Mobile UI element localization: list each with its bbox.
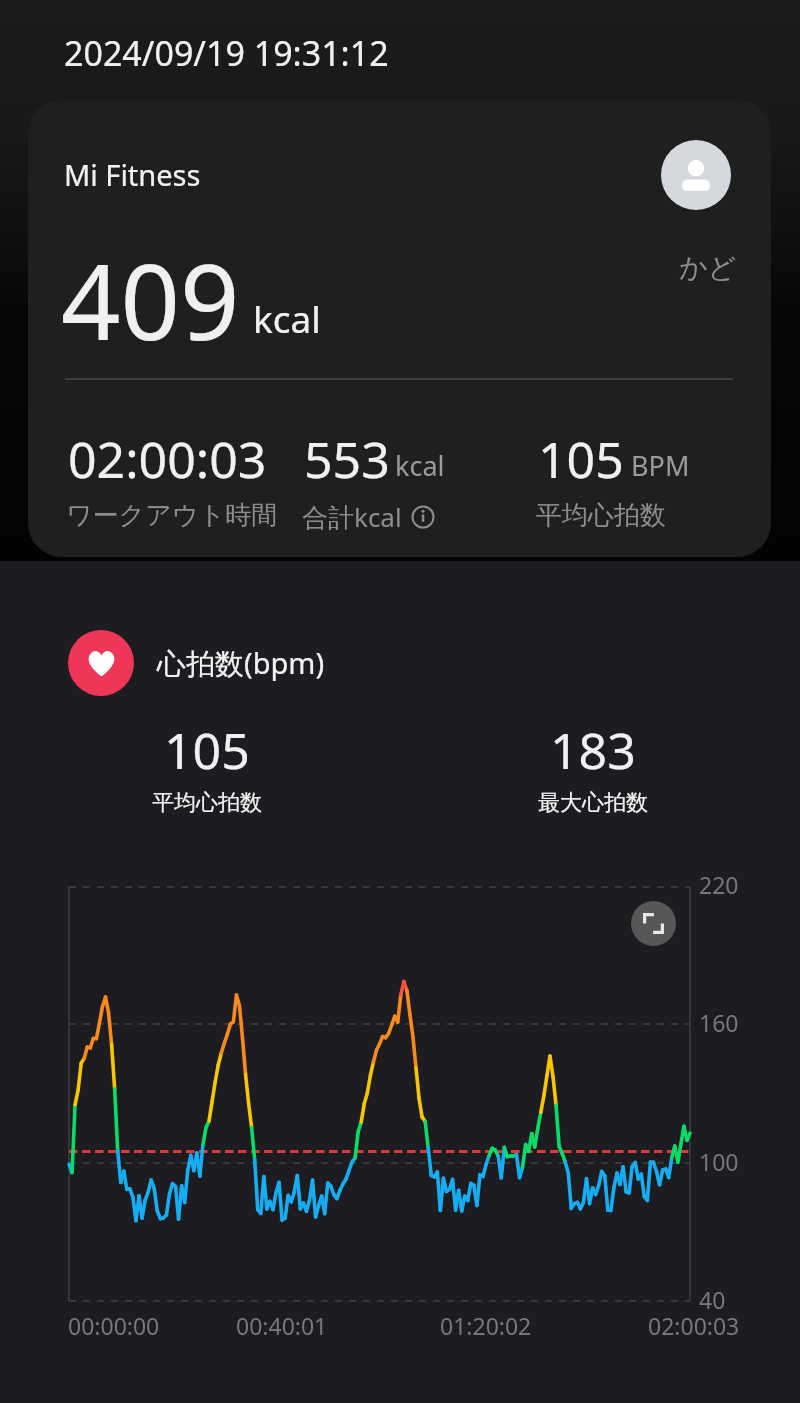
staticText: 409 [61, 229, 240, 371]
staticText: 100 [699, 1146, 739, 1177]
button[interactable]: 心拍数(bpm) [68, 630, 325, 696]
staticText: 平均心拍数 [152, 789, 262, 817]
button[interactable]: 02:00:03 [68, 425, 280, 493]
staticText: 00:00:00 [68, 1310, 160, 1341]
staticText: ワークアウト時間 [66, 499, 278, 532]
staticText: 心拍数(bpm) [157, 643, 325, 683]
staticText: 105 [164, 716, 250, 784]
button[interactable]: Expand chart [631, 901, 676, 946]
staticText: 02:00:03 [68, 425, 267, 493]
staticText: 合計kcal [302, 499, 402, 535]
staticText: BPM [631, 447, 690, 484]
staticText: 160 [699, 1007, 739, 1038]
staticText: 220 [699, 869, 739, 900]
button[interactable]: 105 [538, 425, 668, 493]
staticText: 02:00:03 [648, 1310, 740, 1341]
button[interactable]: 553 [304, 425, 437, 493]
staticText: kcal [395, 447, 445, 484]
button[interactable]: Mi Fitness [28, 100, 771, 557]
staticText: 01:20:02 [440, 1310, 532, 1341]
button[interactable]: Profile [661, 140, 731, 210]
staticText: 00:40:01 [236, 1310, 328, 1341]
staticText: 40 [699, 1284, 726, 1315]
staticText: 2024/09/19 19:31:12 [64, 30, 389, 76]
staticText: かど [679, 250, 737, 285]
staticText: 105 [538, 425, 624, 493]
staticText: kcal [253, 293, 321, 343]
staticText: 553 [304, 425, 390, 493]
staticText: Mi Fitness [64, 155, 201, 194]
staticText: 183 [550, 716, 636, 784]
staticText: 平均心拍数 [536, 499, 666, 532]
staticText: 最大心拍数 [538, 789, 648, 817]
